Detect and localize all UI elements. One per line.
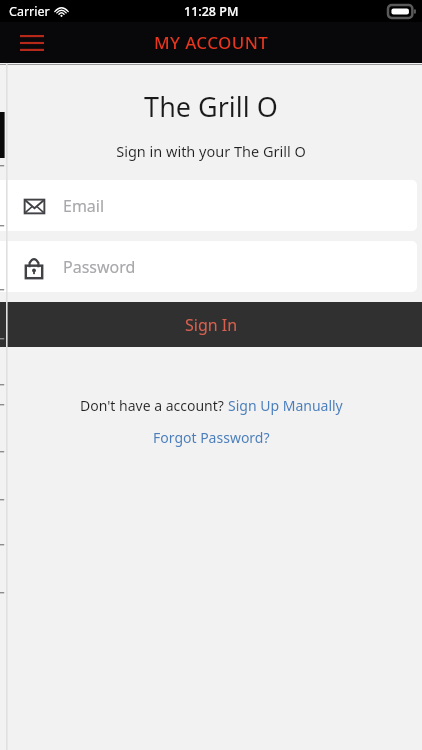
staticText: Email: [63, 195, 105, 217]
button[interactable]: Open navigation menu: [10, 24, 54, 62]
staticText: The Grill O: [0, 88, 422, 125]
staticText: MY ACCOUNT: [154, 31, 269, 54]
button[interactable]: Sign In: [0, 302, 422, 347]
staticText: Don't have a account?: [80, 396, 228, 415]
staticText: 11:28 PM: [184, 3, 239, 20]
staticText: Password: [63, 256, 136, 278]
button[interactable]: Forgot Password?: [153, 428, 270, 447]
staticText: Sign in with your The Grill O: [0, 141, 422, 161]
button[interactable]: Email: [0, 180, 417, 231]
button[interactable]: Password: [0, 241, 417, 292]
staticText: Sign In: [185, 314, 238, 336]
staticText: Sign Up Manually: [228, 396, 343, 415]
staticText: Forgot Password?: [153, 428, 270, 447]
staticText: Carrier: [9, 3, 50, 20]
button[interactable]: Sign Up Manually: [228, 396, 343, 415]
